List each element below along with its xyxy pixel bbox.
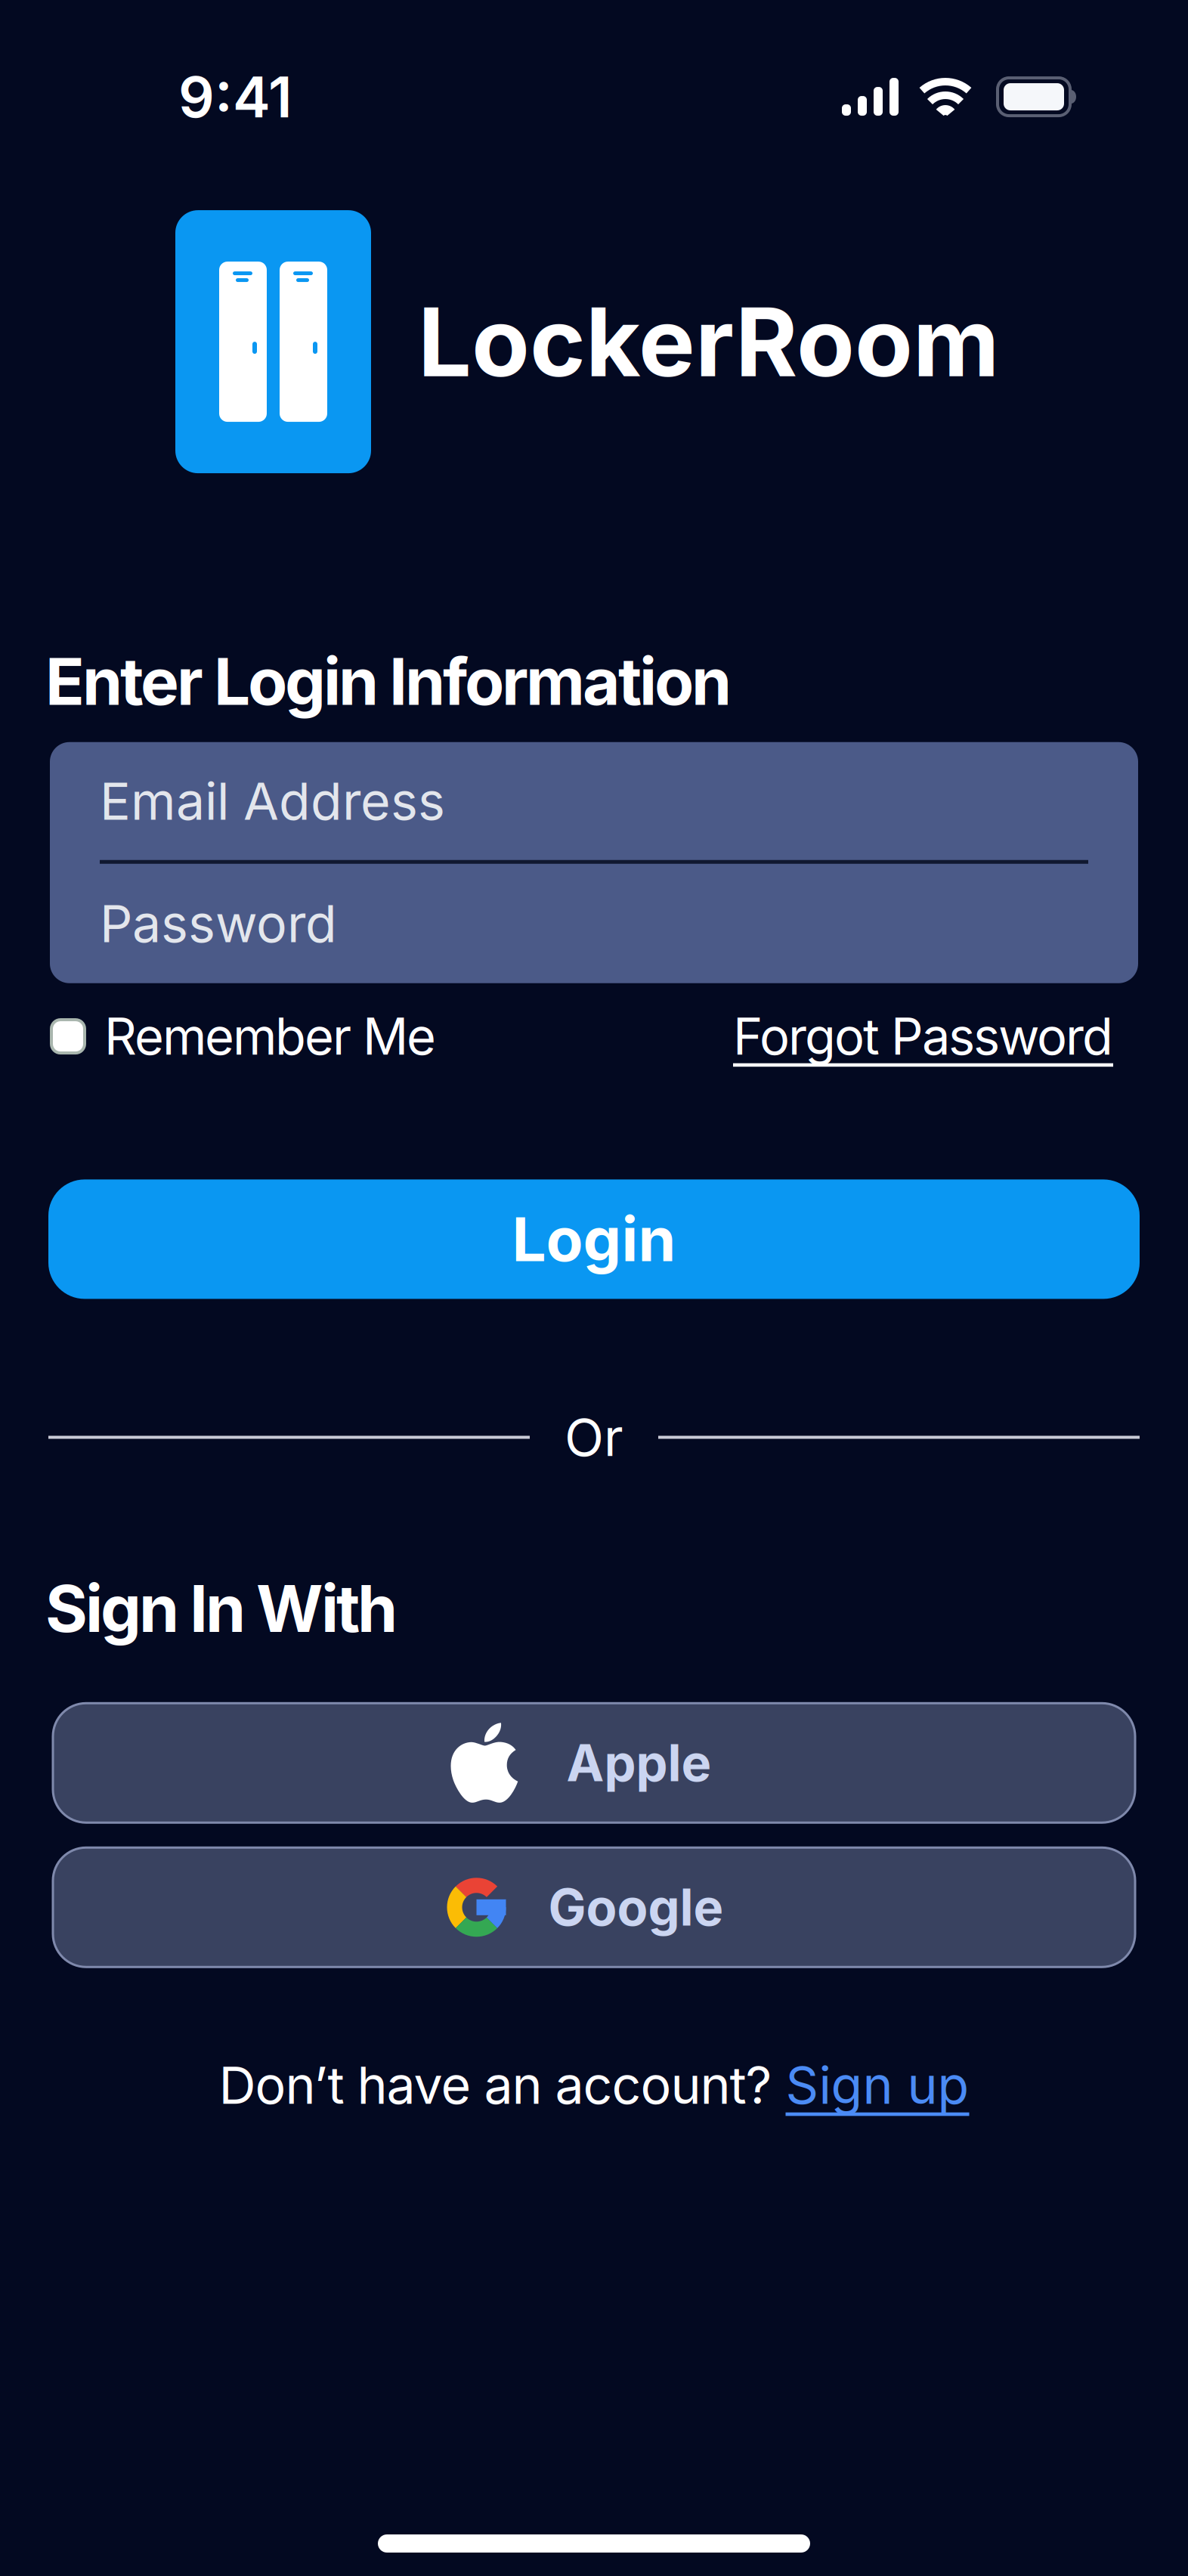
button[interactable]: Email Address: [50, 742, 1138, 860]
button[interactable]: Remember Me: [50, 1007, 436, 1066]
staticText: Sign In With: [45, 1570, 398, 1647]
staticText: Login: [512, 1203, 676, 1275]
staticText: LockerRoom: [418, 286, 999, 398]
button[interactable]: Forgot Password: [733, 1007, 1113, 1066]
button[interactable]: Login: [48, 1179, 1140, 1299]
staticText: Or: [565, 1407, 623, 1468]
button[interactable]: Password: [50, 864, 1138, 983]
staticText: Apple: [566, 1733, 712, 1793]
staticText: Password: [100, 893, 337, 954]
button[interactable]: Google: [53, 1848, 1135, 1967]
button[interactable]: Sign up: [786, 2055, 969, 2115]
button[interactable]: Apple: [53, 1703, 1135, 1823]
staticText: Remember Me: [104, 1007, 436, 1066]
staticText: Email Address: [100, 771, 445, 831]
staticText: Sign up: [786, 2055, 969, 2115]
staticText: 9:41: [178, 63, 292, 130]
staticText: Enter Login Information: [45, 643, 732, 719]
staticText: Forgot Password: [733, 1007, 1113, 1066]
staticText: Don’t have an account?: [219, 2055, 772, 2115]
staticText: Google: [548, 1878, 724, 1937]
